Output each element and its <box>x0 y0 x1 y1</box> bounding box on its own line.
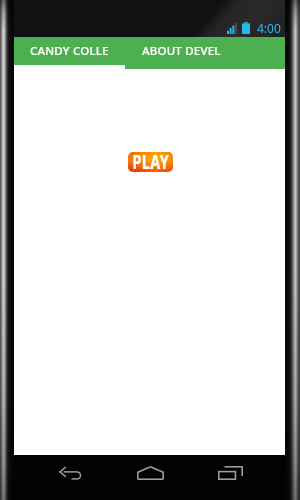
staticText: CANDY COLLE <box>30 43 109 59</box>
staticText: PLAY <box>133 152 169 170</box>
button[interactable]: ABOUT DEVEL <box>125 37 237 69</box>
staticText: ABOUT DEVEL <box>142 43 221 59</box>
button[interactable]: Home <box>121 453 179 493</box>
button[interactable]: Back <box>42 453 100 493</box>
button[interactable]: CANDY COLLE <box>14 37 125 69</box>
button[interactable]: PLAY <box>128 152 173 172</box>
button[interactable]: Recent apps <box>201 453 259 493</box>
staticText: 4:00 <box>257 20 281 36</box>
